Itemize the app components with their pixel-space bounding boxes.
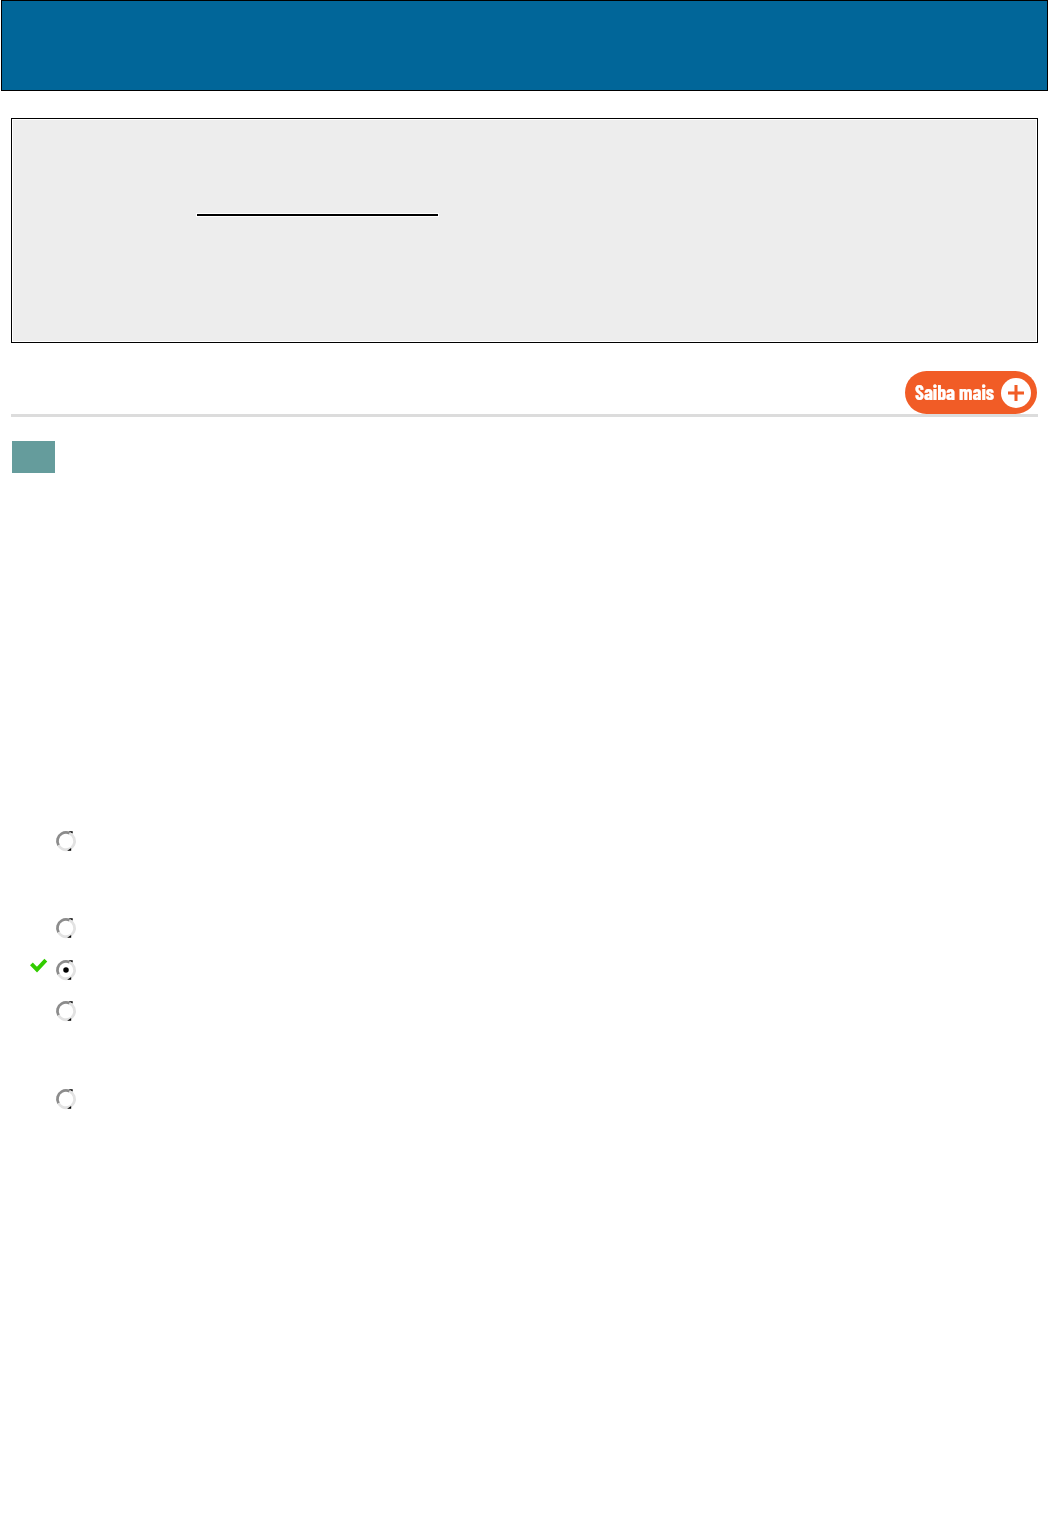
button[interactable]: Answer option xyxy=(56,1089,76,1110)
button[interactable]: Answer option xyxy=(56,831,76,852)
button[interactable]: Answer option xyxy=(56,960,76,981)
staticText: Saiba mais xyxy=(915,380,995,404)
button[interactable]: Answer option xyxy=(56,1001,76,1022)
other: Correct answer xyxy=(31,959,46,973)
button[interactable]: Saiba mais xyxy=(905,371,1037,414)
button[interactable]: Answer option xyxy=(56,918,76,939)
